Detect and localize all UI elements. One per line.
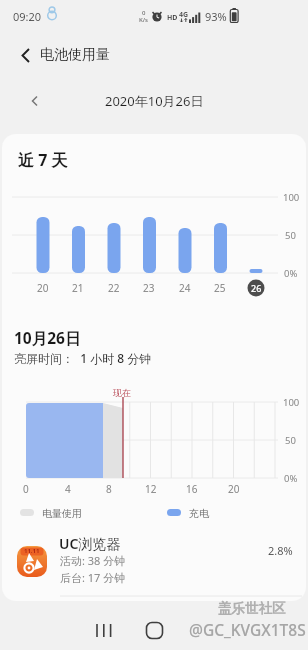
staticText: 后台: 17 分钟 — [60, 570, 126, 585]
staticText: 0% — [284, 472, 298, 485]
staticText: 0 — [23, 482, 29, 496]
staticText: 21 — [72, 281, 84, 295]
staticText: K/s — [139, 16, 149, 24]
staticText: 20 — [37, 281, 49, 295]
staticText: HD — [167, 13, 178, 23]
staticText: 23 — [143, 281, 155, 295]
staticText: 100 — [283, 396, 300, 409]
staticText: 8 — [106, 482, 112, 496]
staticText: 10月26日 — [14, 327, 81, 348]
staticText: 电池使用量 — [40, 46, 110, 64]
staticText: 活动: 38 分钟 — [60, 553, 126, 568]
staticText: 20 — [228, 482, 240, 496]
staticText: 26 — [251, 282, 262, 294]
button[interactable]: 2020年10月26日 — [0, 89, 308, 113]
staticText: 11.11 — [24, 547, 40, 555]
staticText: 100 — [283, 191, 300, 204]
button[interactable] — [2, 536, 306, 596]
staticText: 4G — [179, 10, 189, 20]
button[interactable] — [185, 615, 235, 650]
staticText: 2.8% — [268, 543, 293, 558]
staticText: 50 — [285, 434, 296, 447]
staticText: UC浏览器 — [59, 534, 121, 553]
staticText: 充电 — [189, 507, 209, 520]
staticText: 22 — [108, 281, 120, 295]
staticText: 16 — [186, 482, 198, 496]
staticText: 2020年10月26日 — [105, 92, 204, 110]
staticText: 12 — [145, 482, 157, 496]
staticText: 50 — [285, 229, 296, 242]
staticText: 09:20 — [13, 9, 42, 24]
button[interactable] — [24, 89, 46, 113]
staticText: 93% — [205, 9, 227, 24]
button[interactable] — [10, 40, 38, 70]
staticText: 电量使用 — [42, 507, 82, 520]
button[interactable] — [80, 615, 130, 650]
staticText: 0 — [142, 9, 146, 17]
staticText: 现在 — [113, 387, 131, 398]
staticText: 24 — [179, 281, 191, 295]
staticText: 25 — [214, 281, 226, 295]
staticText: @GC_KVGX1T8S — [189, 619, 306, 640]
staticText: 0% — [284, 267, 298, 280]
staticText: 亮屏时间： 1 小时 8 分钟 — [14, 350, 152, 366]
staticText: 盖乐世社区 — [218, 600, 286, 617]
staticText: 4 — [65, 482, 71, 496]
staticText: 近 7 天 — [18, 149, 68, 171]
button[interactable] — [130, 615, 180, 650]
button[interactable]: 电池使用量 — [40, 43, 110, 67]
